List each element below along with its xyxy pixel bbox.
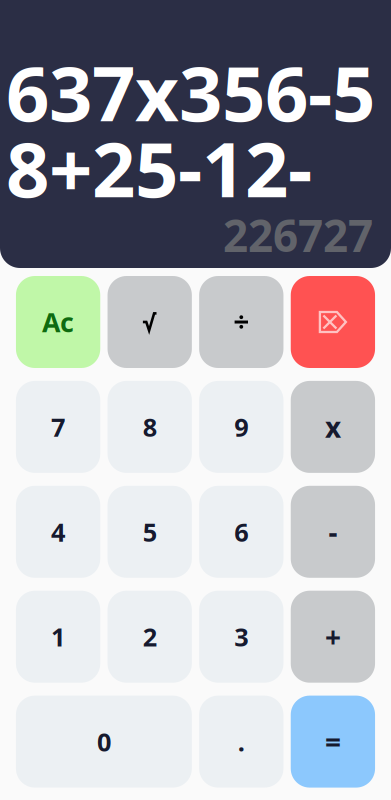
- button[interactable]: 4: [16, 486, 100, 578]
- staticText: 8+25-12-: [6, 117, 312, 218]
- staticText: 7: [51, 410, 65, 444]
- button[interactable]: 5: [108, 486, 192, 578]
- staticText: =: [325, 723, 341, 760]
- staticText: 8: [143, 410, 157, 444]
- button[interactable]: Divide: [199, 276, 283, 368]
- button[interactable]: Square root: [108, 276, 192, 368]
- staticText: +: [325, 618, 341, 655]
- button[interactable]: .: [199, 696, 283, 788]
- button[interactable]: 6: [199, 486, 283, 578]
- staticText: -: [328, 513, 337, 550]
- staticText: 9: [234, 410, 248, 444]
- button[interactable]: 8: [108, 381, 192, 473]
- button[interactable]: x: [291, 381, 375, 473]
- staticText: x: [325, 408, 341, 445]
- button[interactable]: 2: [108, 591, 192, 683]
- staticText: .: [238, 725, 245, 758]
- button[interactable]: Delete: [291, 276, 375, 368]
- button[interactable]: -: [291, 486, 375, 578]
- staticText: 0: [97, 725, 111, 758]
- button[interactable]: +: [291, 591, 375, 683]
- button[interactable]: Ac: [16, 276, 100, 368]
- staticText: 5: [143, 515, 157, 549]
- staticText: 3: [234, 620, 248, 653]
- button[interactable]: 0: [16, 696, 192, 788]
- button[interactable]: =: [291, 696, 375, 788]
- button[interactable]: 7: [16, 381, 100, 473]
- staticText: 4: [51, 515, 65, 549]
- staticText: 2: [143, 620, 157, 653]
- staticText: 6: [234, 515, 248, 549]
- staticText: 1: [51, 620, 65, 653]
- staticText: Ac: [42, 304, 74, 340]
- button[interactable]: 1: [16, 591, 100, 683]
- button[interactable]: 3: [199, 591, 283, 683]
- staticText: 226727: [223, 206, 373, 264]
- staticText: 637x356-5: [6, 41, 375, 142]
- button[interactable]: 9: [199, 381, 283, 473]
